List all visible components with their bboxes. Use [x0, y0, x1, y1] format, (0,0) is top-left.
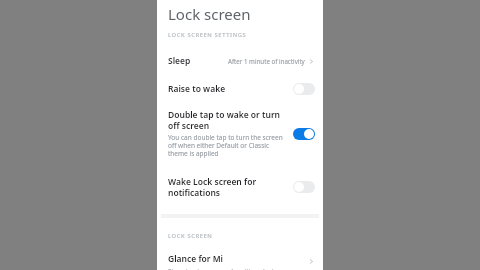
staticText: You can double tap to turn the screen of… [168, 133, 289, 158]
staticText: LOCK SCREEN [168, 232, 213, 240]
button[interactable]: Wake Lock screen for notifications [157, 174, 323, 200]
button[interactable]: Sleep [157, 50, 323, 72]
staticText: Double tap to wake or turn off screen [168, 109, 289, 131]
staticText: Stunning images and exciting stories del… [168, 267, 303, 270]
button[interactable]: Raise to wake [157, 77, 323, 101]
staticText: Sleep [168, 55, 191, 67]
staticText: Lock screen [168, 4, 251, 24]
button[interactable]: Double tap to wake or turn off screen [293, 128, 315, 140]
staticText: After 1 minute of inactivity [228, 57, 305, 65]
staticText: Raise to wake [168, 83, 293, 95]
staticText: LOCK SCREEN SETTINGS [168, 31, 247, 39]
button[interactable]: Glance for Mi [157, 253, 323, 270]
staticText: Glance for Mi [168, 253, 224, 265]
button[interactable]: Double tap to wake or turn off screen [157, 107, 323, 160]
button[interactable]: Raise to wake [293, 83, 315, 95]
staticText: Wake Lock screen for notifications [168, 176, 287, 198]
button[interactable]: Wake Lock screen for notifications [293, 181, 315, 193]
